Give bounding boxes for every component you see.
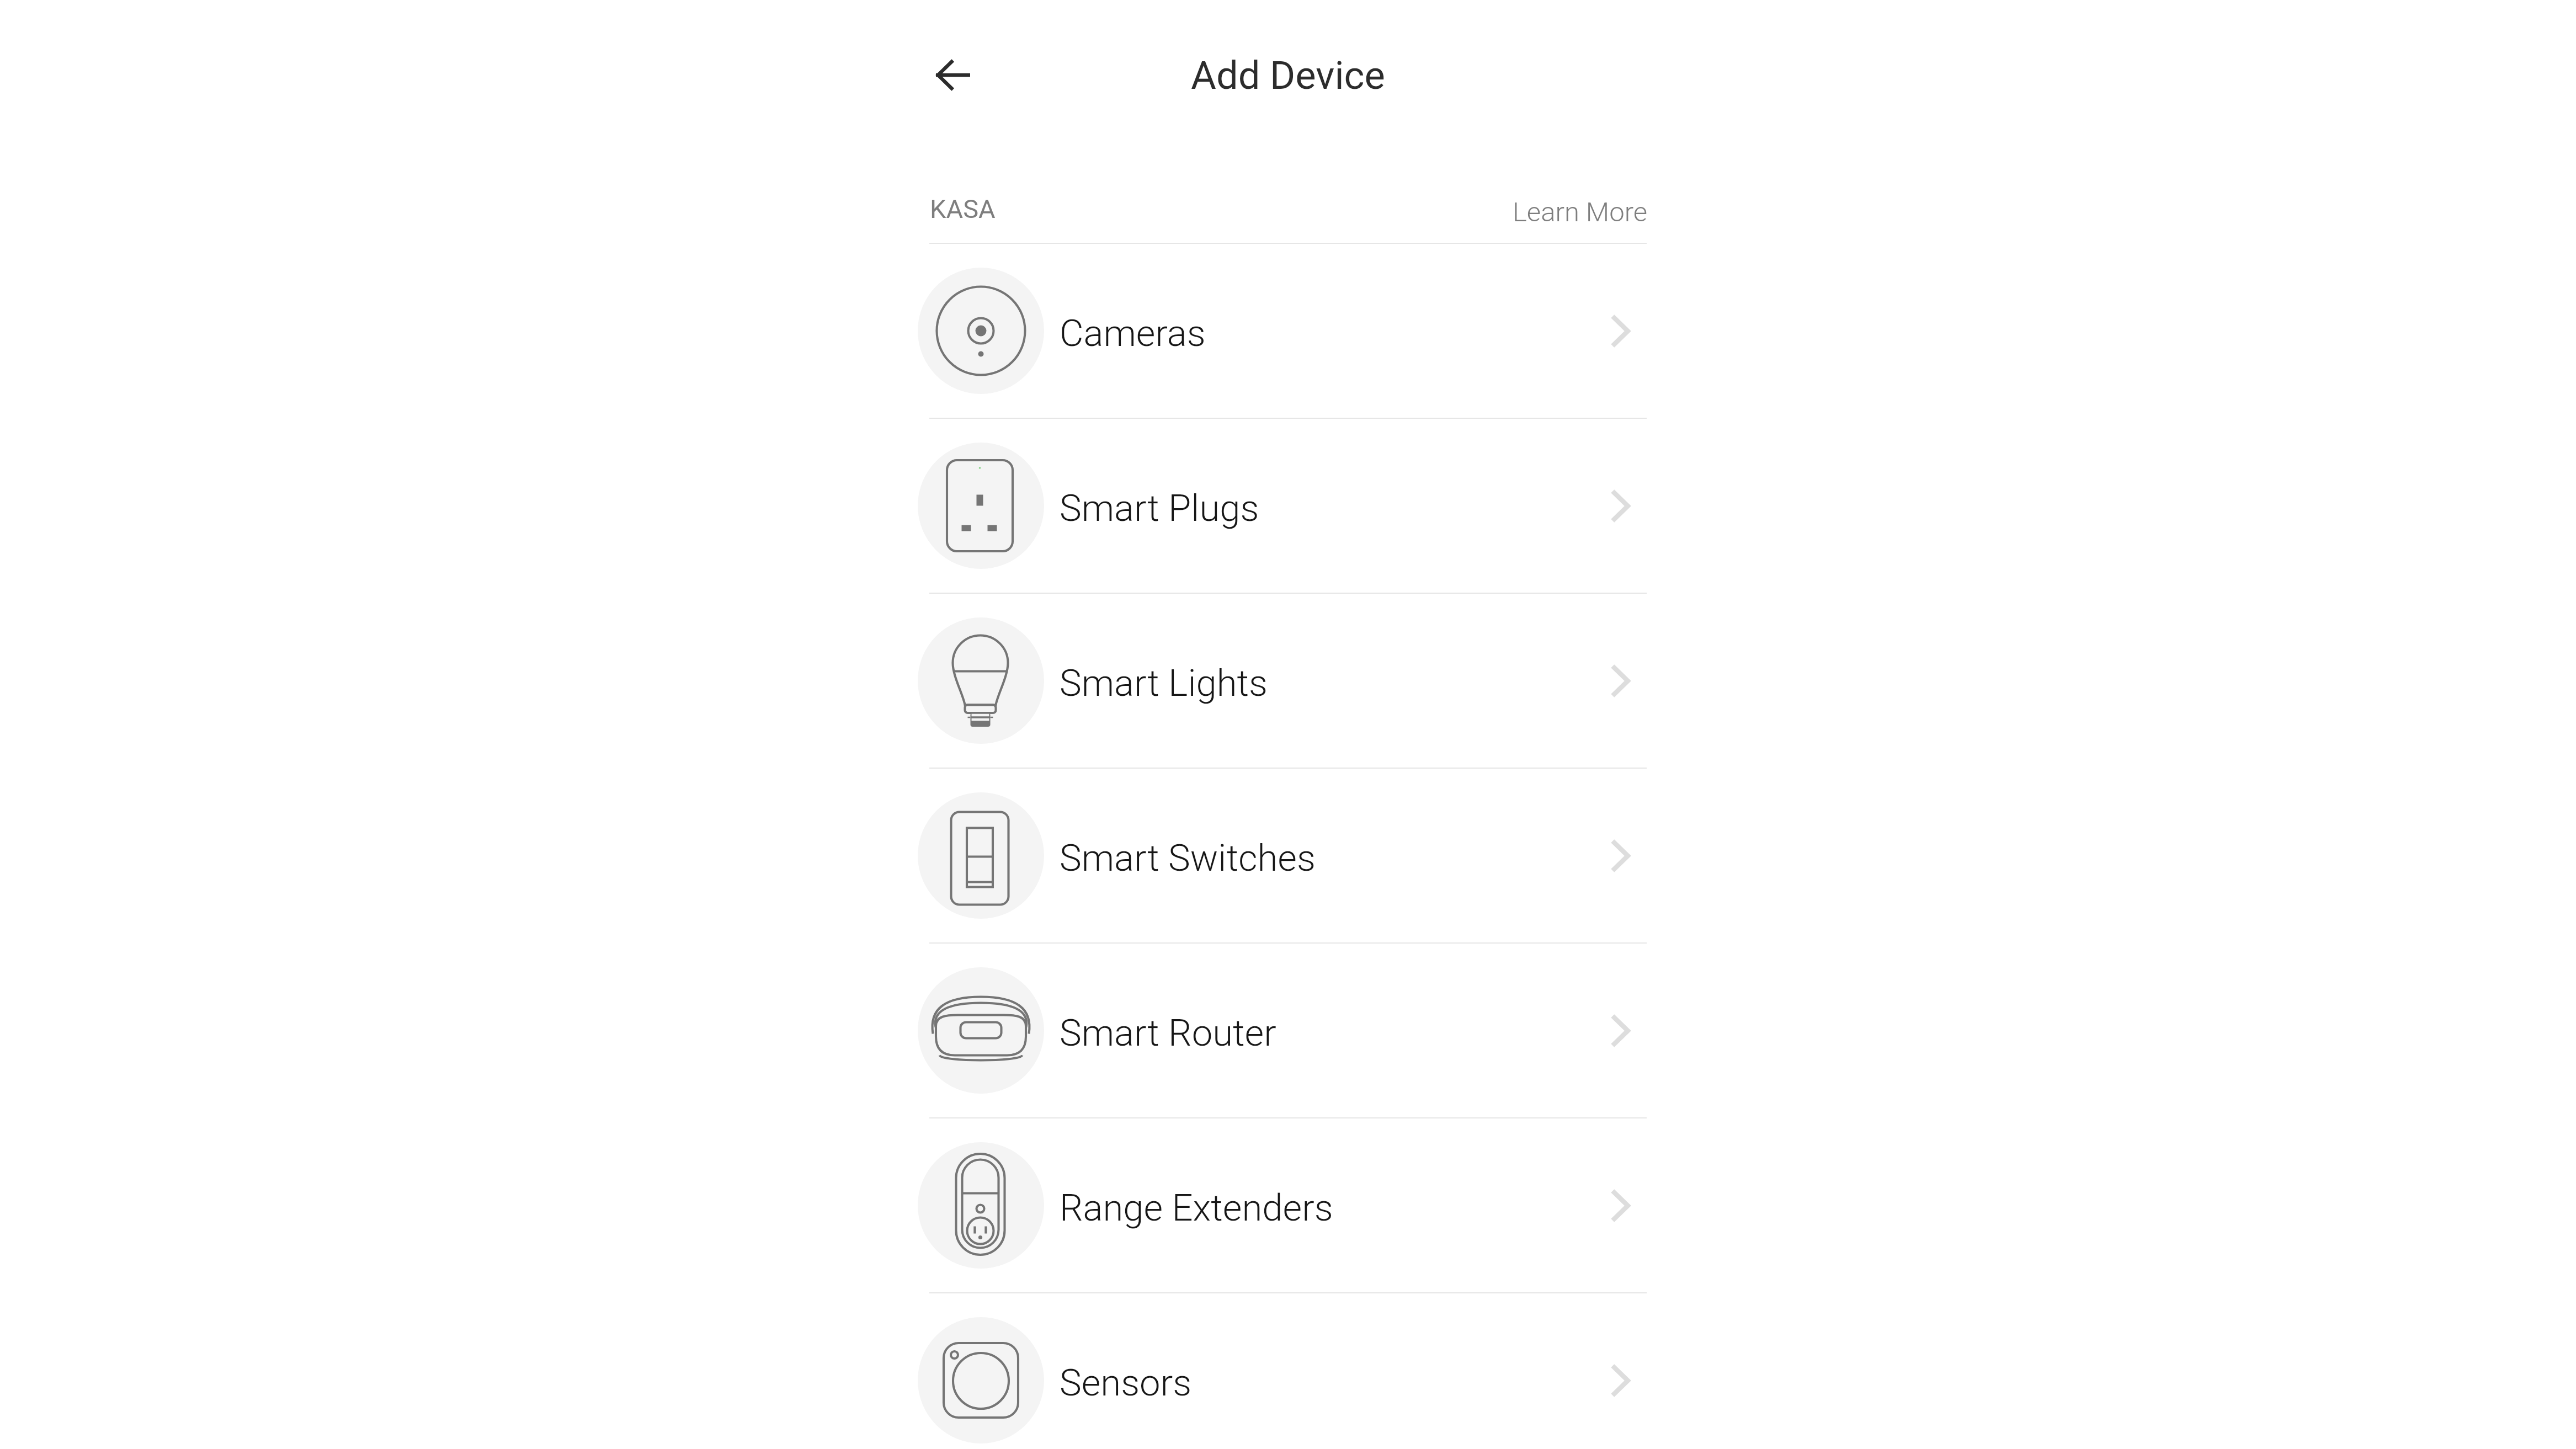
button[interactable]: Sensors (918, 1293, 1658, 1449)
staticText: Smart Plugs (1060, 487, 1259, 530)
staticText: Cameras (1060, 312, 1206, 355)
staticText: Sensors (1060, 1361, 1192, 1405)
staticText: Smart Router (1060, 1011, 1276, 1055)
staticText: Add Device (1191, 53, 1385, 99)
button[interactable]: Cameras (918, 244, 1658, 419)
button[interactable]: Smart Router (918, 944, 1658, 1118)
button[interactable]: Back (920, 42, 986, 108)
button[interactable]: Smart Switches (918, 769, 1658, 944)
button[interactable]: Smart Plugs (918, 419, 1658, 594)
button[interactable]: Smart Lights (918, 594, 1658, 769)
button[interactable]: Learn More (1491, 180, 1658, 243)
staticText: Smart Lights (1060, 662, 1268, 705)
staticText: Range Extenders (1060, 1186, 1333, 1230)
staticText: Learn More (1513, 196, 1648, 226)
staticText: Smart Switches (1060, 837, 1316, 880)
button[interactable]: Range Extenders (918, 1118, 1658, 1293)
staticText: KASA (930, 194, 996, 224)
